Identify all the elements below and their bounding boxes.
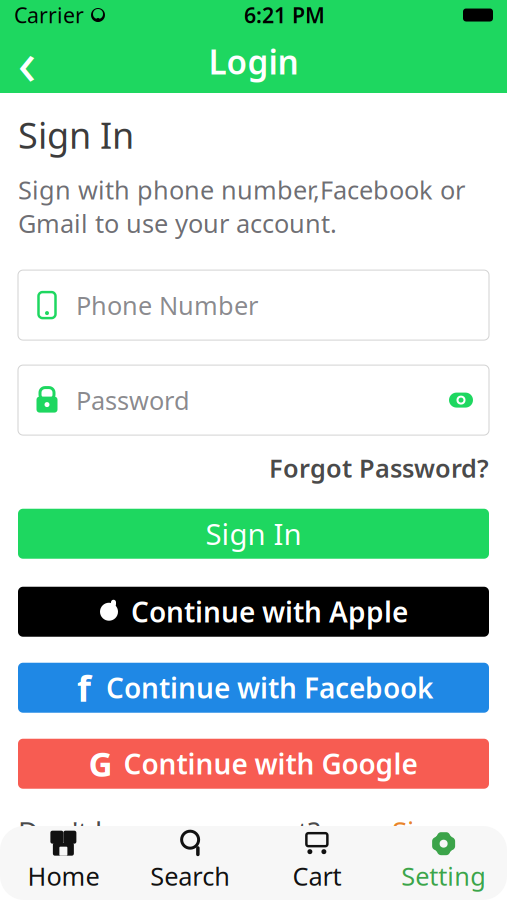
staticText: Continue with Apple [131, 593, 408, 630]
button[interactable]: Forgot Password? [18, 435, 489, 487]
staticText: Sign In [205, 514, 301, 553]
button[interactable]: Continue with Apple [18, 587, 489, 637]
staticText: Forgot Password? [269, 451, 489, 485]
staticText: Cart [292, 859, 341, 893]
staticText: Login [208, 39, 298, 84]
staticText: Search [150, 859, 230, 893]
staticText: Phone Number [76, 288, 258, 322]
button[interactable]: Cart [253, 831, 380, 893]
button[interactable]: Sign up [392, 813, 489, 850]
staticText: Sign up [392, 813, 489, 850]
staticText: Don't have an account? [18, 813, 320, 850]
button[interactable]: Search [127, 831, 254, 893]
staticText: Continue with Facebook [106, 669, 433, 706]
button[interactable]: G [18, 739, 489, 789]
staticText: Sign with phone number,Facebook or Gmail… [18, 173, 465, 240]
staticText: 6:21 PM [244, 1, 325, 29]
staticText: Continue with Google [123, 745, 417, 782]
staticText: Setting [401, 859, 486, 893]
staticText: Password [76, 383, 190, 417]
staticText: Carrier [14, 1, 84, 29]
staticText: Sign In [18, 111, 134, 159]
button[interactable]: f [18, 663, 489, 713]
staticText: ‹ [17, 21, 36, 102]
button[interactable]: Home [0, 831, 127, 893]
staticText: f [77, 664, 91, 712]
button[interactable]: Sign In [18, 509, 489, 559]
staticText: Home [27, 859, 99, 893]
button[interactable]: Back [0, 34, 54, 88]
button[interactable]: Setting [380, 831, 507, 893]
staticText: G [88, 742, 112, 786]
